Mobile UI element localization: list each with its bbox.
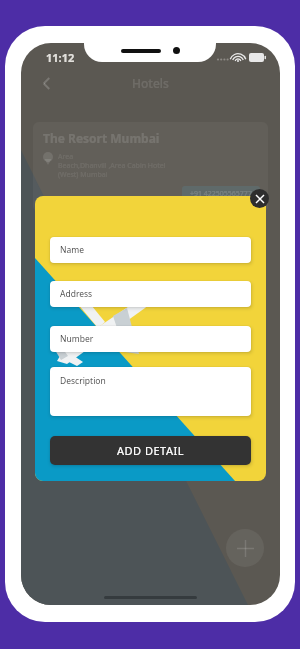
button[interactable]: Description [50,367,251,416]
button[interactable]: Add [226,529,264,567]
button[interactable]: +91 422505565777 [190,189,252,199]
button[interactable]: ADD DETAIL [50,436,251,465]
staticText: +91 422505565777 [190,189,252,199]
staticText: Area Beach,Dhanvill ,Area Cabin Hotel (W… [58,152,166,179]
button[interactable]: Back [33,70,59,96]
button[interactable]: The Resort Mumbai [33,122,268,212]
button[interactable]: Name [50,237,251,263]
staticText: 11:12 [46,50,75,65]
staticText: ADD DETAIL [117,443,184,458]
staticText: Name [60,244,84,256]
staticText: Hotels [132,75,169,91]
button[interactable]: Number [50,326,251,352]
staticText: The Resort Mumbai [43,130,160,146]
staticText: Description [60,375,106,387]
staticText: Number [60,333,94,345]
button[interactable]: Close [250,189,269,208]
staticText: Address [60,288,93,300]
button[interactable]: Address [50,281,251,307]
